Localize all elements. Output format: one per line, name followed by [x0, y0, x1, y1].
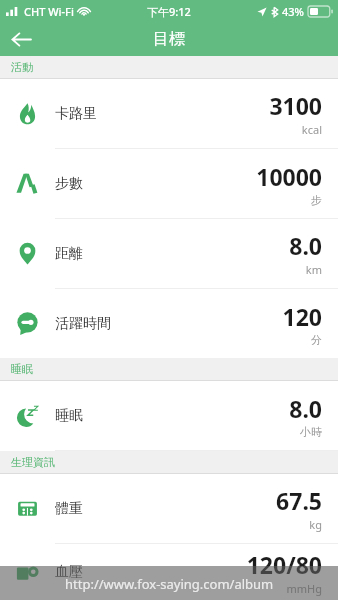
staticText: 120	[282, 301, 322, 332]
staticText: 120/80	[246, 549, 322, 580]
staticText: 步數	[55, 175, 83, 193]
button[interactable]: Weight	[0, 474, 338, 543]
other: Weight	[16, 497, 39, 520]
staticText: 8.0	[289, 230, 322, 261]
button[interactable]: Active time	[0, 289, 338, 358]
other: Blood pressure	[16, 561, 39, 584]
staticText: 67.5	[276, 485, 322, 516]
other: Sleep	[16, 404, 39, 427]
button[interactable]: Steps	[0, 149, 338, 218]
staticText: 血壓	[55, 563, 83, 581]
staticText: 睡眠	[55, 407, 83, 425]
button[interactable]: Back	[0, 22, 42, 56]
other: Distance	[16, 242, 39, 265]
staticText: 3100	[269, 90, 322, 121]
other: Active time	[16, 312, 39, 335]
other: Steps	[16, 172, 39, 195]
staticText: 活躍時間	[55, 315, 111, 333]
staticText: 距離	[55, 245, 83, 263]
staticText: 睡眠	[11, 362, 33, 376]
staticText: CHT Wi-Fi	[24, 4, 74, 19]
other: Calories	[16, 102, 39, 125]
staticText: 生理資訊	[11, 455, 55, 469]
staticText: 8.0	[289, 393, 322, 424]
button[interactable]: Blood pressure	[0, 544, 338, 600]
button[interactable]: Distance	[0, 219, 338, 288]
staticText: 小時	[300, 425, 322, 439]
staticText: km	[305, 262, 322, 277]
staticText: 分	[311, 333, 322, 347]
staticText: 43%	[282, 4, 304, 19]
staticText: 步	[311, 193, 322, 207]
staticText: 體重	[55, 500, 83, 518]
button[interactable]: Calories	[0, 79, 338, 148]
staticText: 卡路里	[55, 105, 97, 123]
staticText: kg	[309, 517, 322, 532]
staticText: 目標	[153, 29, 185, 49]
staticText: kcal	[301, 122, 322, 137]
staticText: 活動	[11, 60, 33, 74]
staticText: 10000	[256, 161, 322, 192]
staticText: 下午9:12	[147, 4, 191, 19]
staticText: http://www.fox-saying.com/album	[65, 575, 274, 593]
button[interactable]: Sleep	[0, 381, 338, 450]
staticText: mmHg	[286, 581, 322, 596]
